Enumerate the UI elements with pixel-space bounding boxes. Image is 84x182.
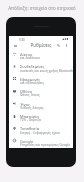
staticText: Μπαταρία: [20, 114, 39, 119]
button[interactable]: [9, 136, 73, 148]
staticText: 72% - Φορτίζει: [20, 118, 42, 122]
button[interactable]: [9, 124, 73, 136]
button[interactable]: [9, 49, 73, 61]
staticText: Ενεργή - 3 εφαρμογές έχουν: [20, 131, 61, 135]
staticText: Δίκτυο: [20, 52, 33, 57]
staticText: Οθόνη: [20, 89, 32, 94]
staticText: 9:30: [19, 38, 25, 42]
button[interactable]: Search: [54, 41, 63, 50]
button[interactable]: Menu: [11, 41, 20, 50]
staticText: Ήχος: [20, 102, 30, 107]
staticText: συσκευές και κοινή χρήση Bluetooth: [20, 69, 74, 73]
staticText: Υπηρεσίες και προτιμήσεις Google: [20, 143, 71, 147]
button[interactable]: [9, 87, 73, 99]
staticText: Εφαρμογές: [20, 77, 41, 82]
staticText: και ειδοποιήσεις: [20, 81, 45, 85]
staticText: Συνδεδεμένες: [20, 64, 45, 69]
staticText: Google: [20, 139, 34, 144]
staticText: Απόδειξη: στοιχείο στο κτηριακό: [0, 5, 84, 11]
staticText: Ρυθμίσεις: [9, 42, 73, 48]
staticText: Φόντο, ύπνος: [20, 93, 40, 97]
staticText: και διαδίκτυο: [20, 56, 40, 60]
staticText: Ένταση, δόνηση: [20, 106, 44, 110]
button[interactable]: More options: [62, 41, 71, 50]
staticText: Τοποθεσία: [20, 126, 40, 131]
button[interactable]: [9, 74, 73, 86]
button[interactable]: [9, 99, 73, 111]
button[interactable]: [9, 62, 73, 74]
button[interactable]: [9, 111, 73, 123]
